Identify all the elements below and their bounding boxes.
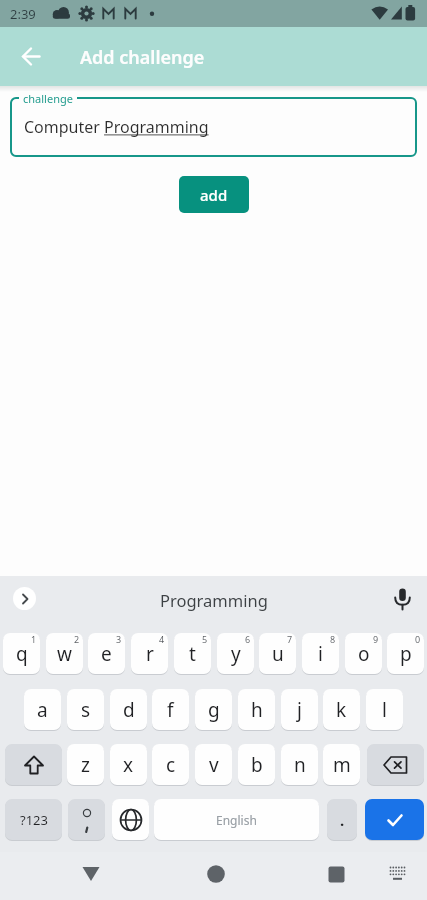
staticText: n <box>294 752 306 778</box>
staticText: y <box>231 641 241 667</box>
staticText: Add challenge <box>80 45 205 70</box>
staticText: 7 <box>287 633 293 645</box>
staticText: j <box>297 697 302 723</box>
button[interactable] <box>13 587 36 610</box>
button[interactable]: v <box>195 744 232 785</box>
staticText: d <box>123 697 135 723</box>
staticText: p <box>400 641 412 667</box>
button[interactable]: d <box>110 689 147 730</box>
staticText: 5 <box>202 633 208 645</box>
staticText: v <box>209 752 219 778</box>
staticText: s <box>81 697 91 723</box>
staticText: m <box>333 752 351 778</box>
staticText: 2:39 <box>10 5 36 23</box>
staticText: ?123 <box>20 811 48 829</box>
button[interactable]: h <box>238 689 275 730</box>
staticText: Computer Programming <box>24 116 209 138</box>
button[interactable]: w <box>46 633 83 674</box>
staticText: English <box>216 812 257 828</box>
button[interactable]: Programming <box>0 576 427 624</box>
button[interactable]: i <box>302 633 339 674</box>
button[interactable]: a <box>24 689 61 730</box>
staticText: t <box>189 641 196 667</box>
button[interactable]: m <box>323 744 360 785</box>
button[interactable]: x <box>110 744 147 785</box>
button[interactable]: t <box>174 633 211 674</box>
button[interactable]: p <box>387 633 424 674</box>
button[interactable]: f <box>152 689 189 730</box>
staticText: h <box>251 697 263 723</box>
staticText: 6 <box>245 633 251 645</box>
staticText: 0 <box>415 633 421 645</box>
button[interactable]: s <box>67 689 104 730</box>
button[interactable]: r <box>131 633 168 674</box>
staticText: 9 <box>373 633 379 645</box>
staticText: 2 <box>74 633 80 645</box>
staticText: o <box>358 641 370 667</box>
button[interactable] <box>365 799 424 840</box>
staticText: a <box>37 697 48 723</box>
staticText: k <box>336 697 347 723</box>
button[interactable]: j <box>281 689 318 730</box>
button[interactable]: z <box>67 744 104 785</box>
button[interactable]: g <box>195 689 232 730</box>
staticText: c <box>166 752 176 778</box>
button[interactable] <box>316 854 356 894</box>
staticText: q <box>16 641 28 667</box>
button[interactable] <box>68 799 105 840</box>
button[interactable]: c <box>152 744 189 785</box>
button[interactable]: q <box>3 633 40 674</box>
button[interactable] <box>14 40 48 74</box>
staticText: 3 <box>116 633 122 645</box>
button[interactable] <box>196 854 236 894</box>
staticText: z <box>81 752 90 778</box>
staticText: Programming <box>160 589 268 611</box>
button[interactable] <box>390 585 415 612</box>
button[interactable]: . <box>327 799 357 840</box>
staticText: . <box>340 810 345 830</box>
button[interactable]: n <box>281 744 318 785</box>
button[interactable] <box>112 799 149 840</box>
staticText: b <box>251 752 263 778</box>
button[interactable] <box>382 858 413 889</box>
staticText: w <box>57 641 72 667</box>
staticText: l <box>382 697 387 723</box>
button[interactable]: l <box>366 689 403 730</box>
staticText: 8 <box>330 633 336 645</box>
staticText: e <box>101 641 112 667</box>
staticText: r <box>146 641 154 667</box>
button[interactable]: ?123 <box>5 799 62 840</box>
staticText: u <box>272 641 284 667</box>
staticText: 1 <box>31 633 37 645</box>
staticText: i <box>318 641 323 667</box>
button[interactable]: b <box>238 744 275 785</box>
staticText: 4 <box>159 633 165 645</box>
button[interactable]: English <box>154 799 319 840</box>
button[interactable] <box>367 744 424 785</box>
staticText: challenge <box>23 91 73 106</box>
button[interactable]: y <box>217 633 254 674</box>
button[interactable]: add <box>179 176 249 213</box>
staticText: g <box>208 697 220 723</box>
button[interactable]: u <box>259 633 296 674</box>
button[interactable] <box>5 744 62 785</box>
staticText: x <box>123 752 134 778</box>
button[interactable]: k <box>323 689 360 730</box>
button[interactable]: o <box>345 633 382 674</box>
button[interactable]: e <box>88 633 125 674</box>
button[interactable]: Computer Programming <box>10 97 417 157</box>
button[interactable] <box>71 854 111 894</box>
staticText: add <box>200 185 228 205</box>
staticText: f <box>167 697 174 723</box>
